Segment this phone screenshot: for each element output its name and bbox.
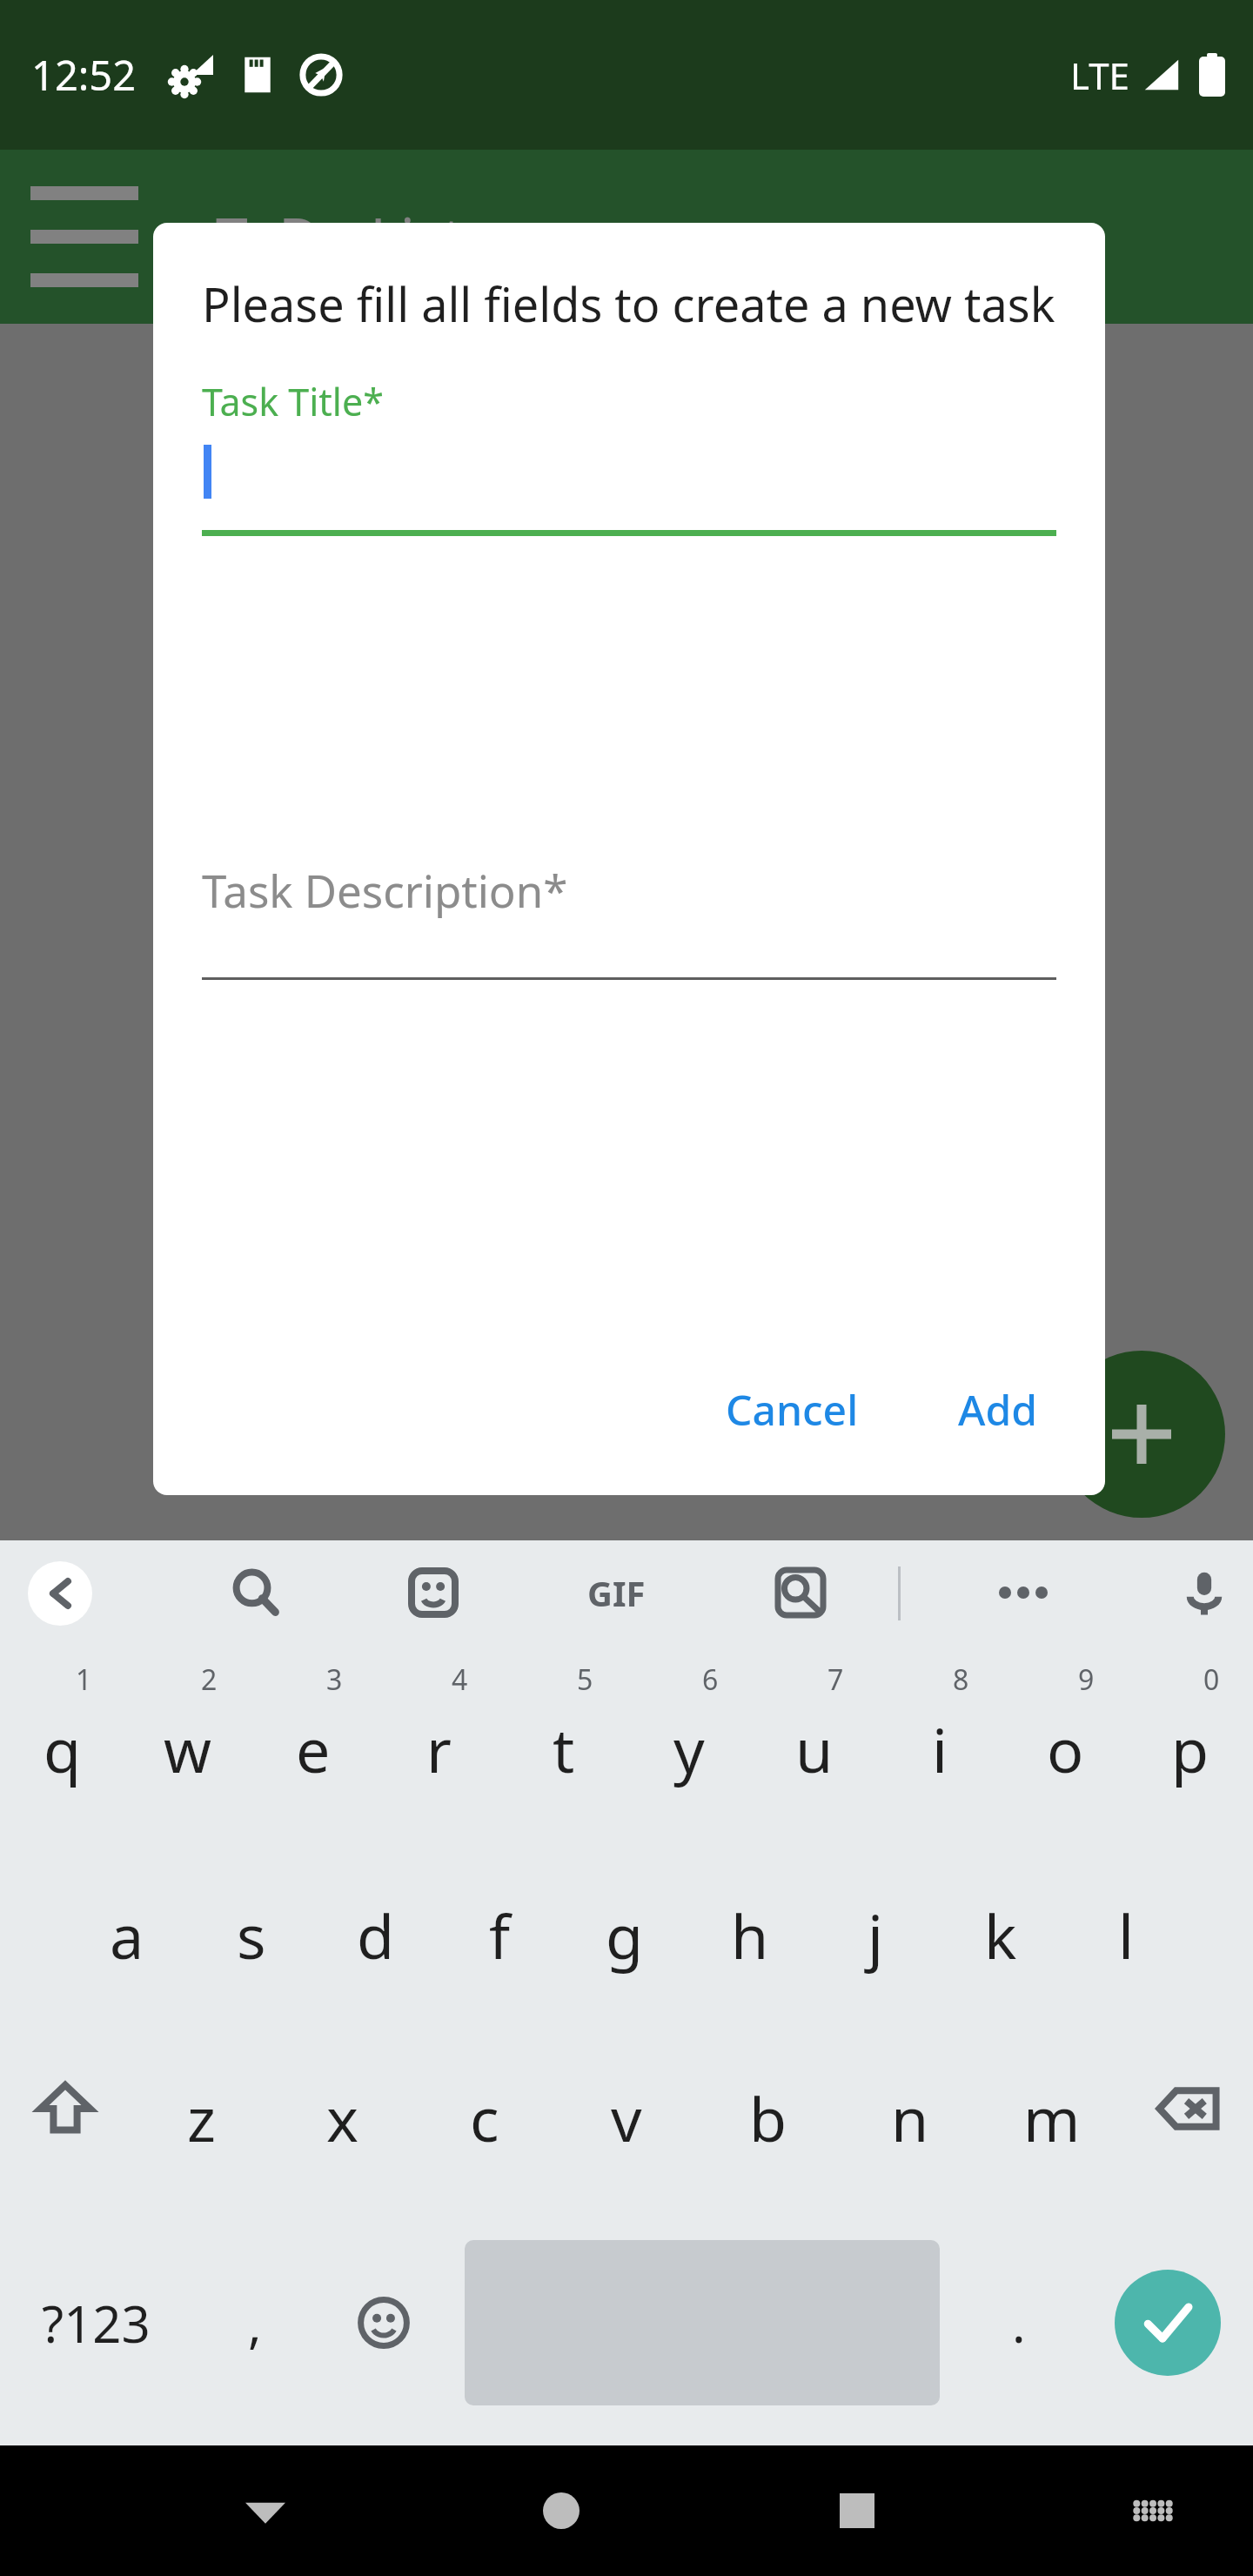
staticText: t [553, 1707, 575, 1790]
staticText: k [984, 1894, 1017, 1976]
staticText: 9 [1078, 1660, 1095, 1699]
button[interactable]: 8 [877, 1645, 1002, 1835]
staticText: r [426, 1707, 452, 1790]
staticText: i [932, 1707, 948, 1790]
staticText: j [868, 1894, 884, 1976]
staticText: o [1047, 1707, 1084, 1790]
staticText: GIF [587, 1569, 646, 1616]
button[interactable]: m [981, 2017, 1122, 2200]
button[interactable]: 1 [0, 1645, 125, 1835]
staticText: g [606, 1894, 644, 1976]
button[interactable]: Backspace [1122, 2017, 1253, 2200]
button[interactable]: z [131, 2017, 271, 2200]
button[interactable]: v [555, 2017, 697, 2200]
button[interactable]: 9 [1002, 1645, 1128, 1835]
staticText: p [1171, 1707, 1209, 1790]
staticText: h [731, 1894, 769, 1976]
staticText: q [44, 1707, 82, 1790]
button[interactable]: , [191, 2200, 318, 2445]
button[interactable]: Task Description* [202, 860, 1056, 980]
button[interactable]: Voice input [1163, 1551, 1246, 1634]
staticText: Cancel [726, 1381, 859, 1438]
staticText: 0 [1203, 1660, 1220, 1699]
staticText: 8 [953, 1660, 969, 1699]
staticText: l [1118, 1894, 1135, 1976]
staticText: 7 [828, 1660, 844, 1699]
staticText: 4 [452, 1660, 468, 1699]
staticText: Please fill all fields to create a new t… [202, 272, 1055, 336]
staticText: Add [958, 1381, 1037, 1438]
button[interactable]: 0 [1128, 1645, 1253, 1835]
staticText: c [470, 2076, 499, 2159]
button[interactable]: x [271, 2017, 413, 2200]
staticText: 1 [76, 1660, 92, 1699]
staticText: 2 [201, 1660, 218, 1699]
button[interactable]: Task Title* [202, 376, 1056, 536]
staticText: 6 [702, 1660, 719, 1699]
staticText: m [1023, 2076, 1081, 2159]
staticText: . [1012, 2289, 1026, 2358]
staticText: d [357, 1894, 395, 1976]
button[interactable]: Open navigation menu [37, 189, 132, 285]
button[interactable]: 4 [376, 1645, 501, 1835]
button[interactable]: Add [935, 1364, 1060, 1455]
staticText: v [611, 2076, 642, 2159]
button[interactable]: More options [982, 1551, 1065, 1634]
button[interactable]: Back [218, 2463, 313, 2559]
button[interactable]: Enter [1115, 2270, 1221, 2376]
button[interactable]: d [313, 1835, 438, 2017]
button[interactable]: Stickers [392, 1551, 475, 1634]
button[interactable]: h [687, 1835, 813, 2017]
button[interactable]: Translate [759, 1551, 842, 1634]
staticText: e [296, 1707, 331, 1790]
button[interactable]: 5 [501, 1645, 626, 1835]
staticText: 5 [577, 1660, 593, 1699]
staticText: b [749, 2076, 787, 2159]
staticText: y [673, 1707, 705, 1790]
staticText: Task Description* [202, 860, 568, 920]
button[interactable]: ?123 [0, 2200, 191, 2445]
staticText: ?123 [42, 2289, 151, 2358]
staticText: x [326, 2076, 359, 2159]
button[interactable]: 7 [752, 1645, 877, 1835]
button[interactable]: Close toolbar [28, 1561, 92, 1626]
staticText: ToDo List [216, 198, 464, 276]
button[interactable]: k [938, 1835, 1063, 2017]
button[interactable]: Cancel [703, 1364, 881, 1455]
button[interactable]: l [1063, 1835, 1189, 2017]
staticText: , [248, 2289, 262, 2358]
staticText: f [489, 1894, 511, 1976]
button[interactable]: . [955, 2200, 1082, 2445]
button[interactable]: a [64, 1835, 189, 2017]
staticText: z [187, 2076, 216, 2159]
button[interactable]: GIF [574, 1551, 658, 1634]
button[interactable]: f [438, 1835, 562, 2017]
button[interactable]: Shift [0, 2017, 131, 2200]
staticText: w [164, 1707, 212, 1790]
staticText: a [110, 1894, 144, 1976]
button[interactable]: Search [214, 1551, 298, 1634]
button[interactable]: g [562, 1835, 687, 2017]
staticText: s [237, 1894, 266, 1976]
button[interactable]: j [813, 1835, 938, 2017]
button[interactable]: Switch keyboard [1105, 2463, 1201, 2559]
staticText: u [795, 1707, 834, 1790]
button[interactable]: Home [513, 2463, 609, 2559]
staticText: 12:52 [31, 47, 137, 103]
button[interactable]: Recent apps [809, 2463, 905, 2559]
staticText: Task Title* [202, 376, 384, 427]
staticText: n [891, 2076, 929, 2159]
button[interactable]: n [839, 2017, 981, 2200]
button[interactable]: c [413, 2017, 555, 2200]
button[interactable]: 2 [125, 1645, 251, 1835]
staticText: 3 [326, 1660, 343, 1699]
button[interactable]: b [697, 2017, 839, 2200]
button[interactable]: 3 [251, 1645, 376, 1835]
button[interactable]: Emoji [318, 2200, 449, 2445]
button[interactable]: s [189, 1835, 313, 2017]
button[interactable]: Add new task [1058, 1351, 1225, 1518]
staticText: LTE [1070, 50, 1129, 100]
button[interactable]: 6 [626, 1645, 752, 1835]
